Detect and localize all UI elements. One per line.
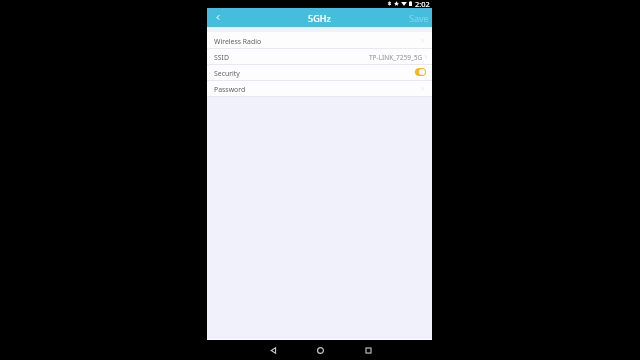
staticText: Wireless Radio [214,37,262,46]
button[interactable]: Password [207,80,432,96]
staticText: 5GHz [308,12,331,24]
staticText: 2:02 [415,0,430,7]
staticText: Security [214,69,240,78]
button[interactable]: Back [207,8,229,27]
button[interactable]: Recent apps [361,343,375,357]
staticText: Save [409,12,429,24]
button[interactable]: SSID [207,48,432,64]
staticText: TP-LINK_7259_5G [369,53,423,62]
staticText: Password [214,85,246,94]
button[interactable]: Security [207,64,432,80]
staticText: SSID [214,53,229,62]
button[interactable]: Back [266,343,280,357]
button[interactable]: Wireless Radio [207,32,432,48]
button[interactable]: Save [403,8,432,27]
button[interactable]: Home [313,343,327,357]
button[interactable]: Security toggle [415,68,426,76]
